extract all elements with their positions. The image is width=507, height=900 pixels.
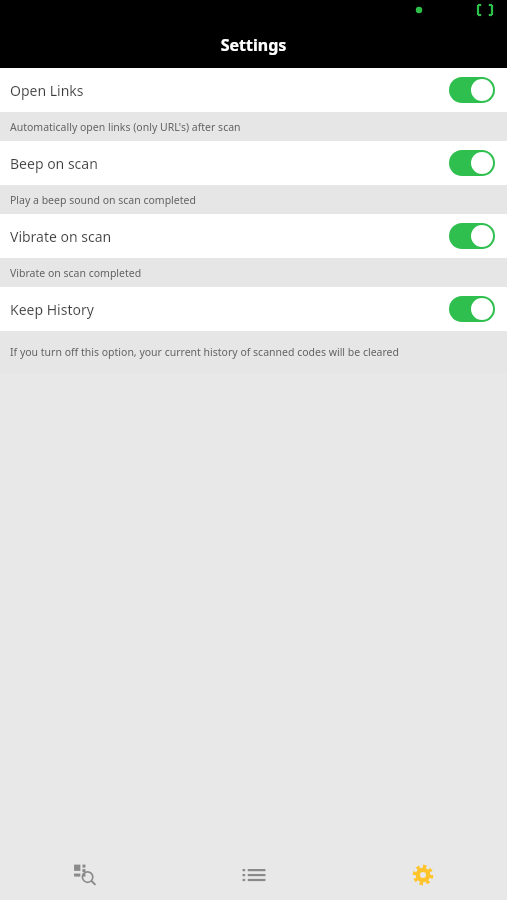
button[interactable]: Toggle (449, 223, 495, 249)
button[interactable]: Toggle (449, 150, 495, 176)
staticText: If you turn off this option, your curren… (10, 345, 399, 359)
button[interactable]: Vibrate on scan (0, 214, 507, 258)
staticText: Keep History (10, 300, 449, 319)
button[interactable]: Keep History (0, 287, 507, 331)
button[interactable]: Open Links (0, 68, 507, 112)
button[interactable]: Scan (0, 850, 169, 900)
button[interactable]: History (169, 850, 338, 900)
button[interactable]: Beep on scan (0, 141, 507, 185)
button[interactable]: Settings (338, 850, 507, 900)
staticText: Beep on scan (10, 154, 449, 173)
staticText: Settings (0, 34, 507, 56)
staticText: Vibrate on scan (10, 227, 449, 246)
button[interactable]: Toggle (449, 77, 495, 103)
staticText: Play a beep sound on scan completed (10, 193, 196, 207)
staticText: Open Links (10, 81, 449, 100)
staticText: Automatically open links (only URL's) af… (10, 120, 241, 134)
button[interactable]: Toggle (449, 296, 495, 322)
staticText: Vibrate on scan completed (10, 266, 142, 280)
